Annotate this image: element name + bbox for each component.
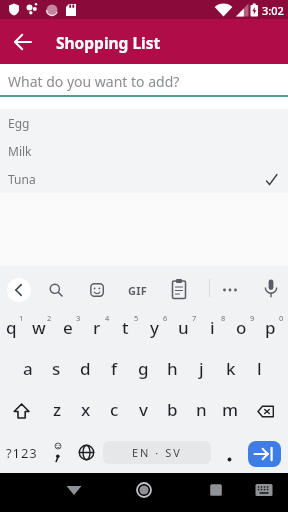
button[interactable]: q [0, 309, 28, 350]
staticText: ?123 [6, 444, 38, 462]
button[interactable]: p [259, 309, 288, 350]
button[interactable]: ?123 [0, 432, 43, 473]
staticText: 1 [19, 313, 24, 323]
button[interactable] [55, 473, 89, 507]
button[interactable]: n [187, 391, 216, 432]
staticText: i [210, 316, 215, 339]
button[interactable]: Milk [0, 137, 288, 165]
staticText: k [226, 357, 236, 380]
staticText: Shopping List [56, 32, 161, 53]
staticText: z [53, 398, 62, 421]
staticText: h [167, 357, 178, 380]
button[interactable]: a [14, 350, 42, 391]
staticText: 8 [221, 313, 226, 323]
staticText: 3:02 [262, 3, 284, 18]
button[interactable]: k [216, 350, 245, 391]
button[interactable]: GIF [120, 272, 156, 308]
button[interactable] [251, 473, 285, 507]
button[interactable]: EN · SV [103, 441, 211, 464]
staticText: f [111, 357, 118, 380]
staticText: o [236, 316, 247, 339]
button[interactable] [127, 473, 161, 507]
staticText: 5 [134, 313, 139, 323]
staticText: v [139, 398, 148, 421]
button[interactable]: z [43, 391, 71, 432]
staticText: 9 [250, 313, 255, 323]
button[interactable] [38, 272, 74, 308]
staticText: s [52, 357, 61, 380]
button[interactable]: t [114, 309, 143, 350]
button[interactable]: o [230, 309, 259, 350]
button[interactable]: e [56, 309, 85, 350]
staticText: 3 [76, 313, 81, 323]
button[interactable]: w [28, 309, 56, 350]
staticText: e [63, 316, 73, 339]
staticText: b [167, 398, 178, 421]
staticText: 6 [163, 313, 168, 323]
button[interactable] [215, 432, 244, 473]
button[interactable]: Tuna [0, 165, 288, 193]
button[interactable]: r [85, 309, 114, 350]
button[interactable]: m [216, 391, 245, 432]
button[interactable]: What do you want to add? [0, 64, 288, 95]
button[interactable]: l [245, 350, 274, 391]
button[interactable]: x [71, 391, 100, 432]
staticText: 0 [279, 313, 284, 323]
button[interactable]: f [100, 350, 129, 391]
staticText: GIF [128, 283, 148, 298]
staticText: EN · SV [132, 445, 182, 460]
button[interactable] [248, 441, 281, 467]
button[interactable]: b [158, 391, 187, 432]
button[interactable]: v [129, 391, 158, 432]
staticText: 7 [192, 313, 197, 323]
button[interactable] [43, 432, 72, 473]
button[interactable]: y [143, 309, 172, 350]
button[interactable]: u [172, 309, 201, 350]
staticText: p [265, 316, 276, 339]
staticText: q [6, 316, 17, 339]
staticText: t [122, 316, 129, 339]
button[interactable]: g [129, 350, 158, 391]
staticText: l [257, 357, 262, 380]
button[interactable] [5, 24, 41, 60]
staticText: What do you want to add? [8, 72, 180, 91]
button[interactable] [79, 272, 115, 308]
button[interactable]: h [158, 350, 187, 391]
button[interactable]: d [71, 350, 100, 391]
button[interactable] [161, 272, 197, 308]
button[interactable] [253, 272, 288, 308]
button[interactable] [1, 272, 37, 308]
staticText: m [222, 398, 239, 421]
staticText: 2 [47, 313, 52, 323]
staticText: 4 [105, 313, 110, 323]
button[interactable]: i [201, 309, 230, 350]
staticText: Egg [8, 115, 30, 131]
staticText: a [23, 357, 33, 380]
button[interactable]: s [42, 350, 71, 391]
staticText: u [178, 316, 189, 339]
staticText: d [80, 357, 91, 380]
button[interactable] [212, 272, 248, 308]
staticText: n [196, 398, 207, 421]
button[interactable]: j [187, 350, 216, 391]
button[interactable] [72, 432, 101, 473]
staticText: j [199, 357, 204, 380]
staticText: w [32, 316, 46, 339]
button[interactable] [0, 391, 43, 432]
button[interactable] [245, 391, 288, 432]
staticText: Milk [8, 143, 32, 159]
staticText: Tuna [8, 171, 36, 187]
staticText: g [138, 357, 149, 380]
staticText: r [93, 316, 101, 339]
button[interactable]: Egg [0, 109, 288, 137]
button[interactable] [199, 473, 233, 507]
staticText: y [150, 316, 159, 339]
staticText: c [110, 398, 119, 421]
button[interactable]: c [100, 391, 129, 432]
staticText: x [81, 398, 91, 421]
